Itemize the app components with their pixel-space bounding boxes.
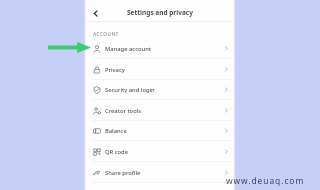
button[interactable]: Manage account xyxy=(85,38,235,59)
button[interactable]: Balance xyxy=(85,120,235,141)
staticText: Privacy xyxy=(105,66,125,74)
staticText: Settings and privacy xyxy=(127,8,193,17)
staticText: Security and login xyxy=(105,86,155,94)
button[interactable]: Creator tools xyxy=(85,100,235,121)
staticText: QR code xyxy=(105,148,129,156)
staticText: Creator tools xyxy=(105,107,142,115)
button[interactable]: Share profile xyxy=(85,162,235,183)
staticText: Balance xyxy=(105,127,127,135)
button[interactable]: QR code xyxy=(85,141,235,162)
button[interactable]: Back xyxy=(88,6,102,20)
staticText: ACCOUNT xyxy=(93,31,119,38)
button[interactable]: Privacy xyxy=(85,59,235,80)
staticText: www.deuaq.com xyxy=(226,175,305,186)
staticText: Manage account xyxy=(105,45,152,53)
button[interactable]: Security and login xyxy=(85,79,235,100)
staticText: Share profile xyxy=(105,169,141,177)
